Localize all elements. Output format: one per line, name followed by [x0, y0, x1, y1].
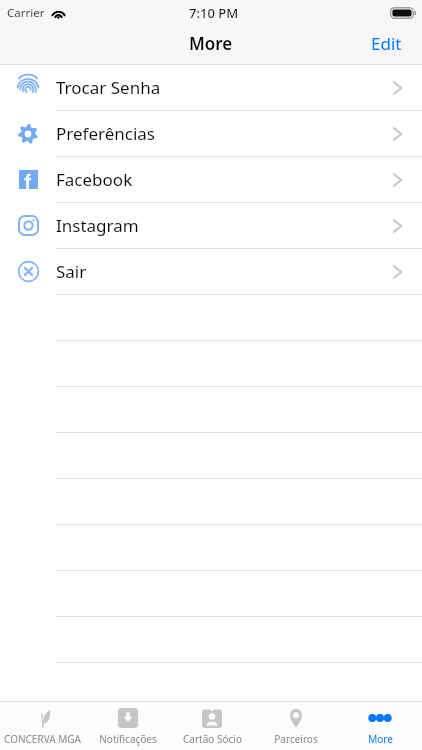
- staticText: Trocar Senha: [56, 76, 161, 99]
- staticText: Edit: [371, 32, 402, 55]
- staticText: Instagram: [56, 214, 139, 237]
- button[interactable]: Notificações: [85, 706, 170, 746]
- staticText: Preferências: [56, 122, 155, 145]
- button[interactable]: Instagram: [0, 203, 422, 249]
- button[interactable]: Edit: [357, 26, 422, 63]
- staticText: Cartão Sócio: [183, 732, 242, 746]
- staticText: Parceiros: [274, 732, 318, 746]
- staticText: 7:10 PM: [189, 4, 239, 22]
- button[interactable]: More: [338, 706, 422, 746]
- button[interactable]: Sair: [0, 249, 422, 295]
- staticText: Facebook: [56, 168, 133, 191]
- staticText: CONCERVA MGA: [4, 732, 81, 746]
- button[interactable]: CONCERVA MGA: [0, 706, 85, 746]
- staticText: Notificações: [99, 732, 157, 746]
- staticText: More: [189, 32, 233, 55]
- button[interactable]: Facebook: [0, 157, 422, 203]
- button[interactable]: Preferências: [0, 111, 422, 157]
- button[interactable]: Trocar Senha: [0, 65, 422, 111]
- staticText: Carrier: [7, 5, 45, 21]
- staticText: Sair: [56, 260, 87, 283]
- staticText: More: [368, 732, 393, 746]
- button[interactable]: Cartão Sócio: [170, 706, 254, 746]
- button[interactable]: Parceiros: [254, 706, 338, 746]
